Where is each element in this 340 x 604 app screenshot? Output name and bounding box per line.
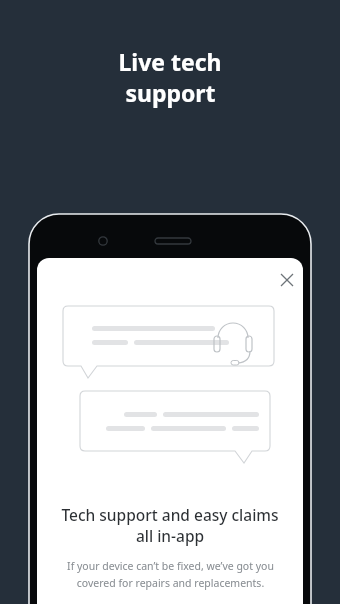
- staticText: If your device can’t be fixed, we’ve got…: [67, 559, 274, 590]
- button[interactable]: Close: [269, 262, 303, 298]
- staticText: Tech support and easy claims all in-app: [61, 504, 279, 547]
- staticText: support: [125, 77, 216, 108]
- staticText: Live tech: [118, 46, 222, 77]
